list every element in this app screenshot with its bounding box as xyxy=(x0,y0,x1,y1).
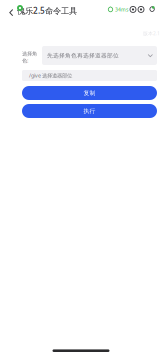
staticText: 执行 xyxy=(83,107,95,115)
button[interactable]: 复制 xyxy=(22,86,157,100)
staticText: 先选择角色再选择道器部位 xyxy=(47,52,119,59)
staticText: 傀乐2.5命令工具 xyxy=(17,5,77,16)
staticText: 选择角色: xyxy=(22,50,37,64)
button[interactable]: 执行 xyxy=(22,104,157,118)
button[interactable]: Back xyxy=(0,4,20,21)
staticText: 版本2.1 xyxy=(143,30,160,37)
staticText: 34ms xyxy=(115,6,128,13)
staticText: 复制 xyxy=(83,89,95,97)
staticText: /give 选择道器部位 xyxy=(29,72,72,79)
